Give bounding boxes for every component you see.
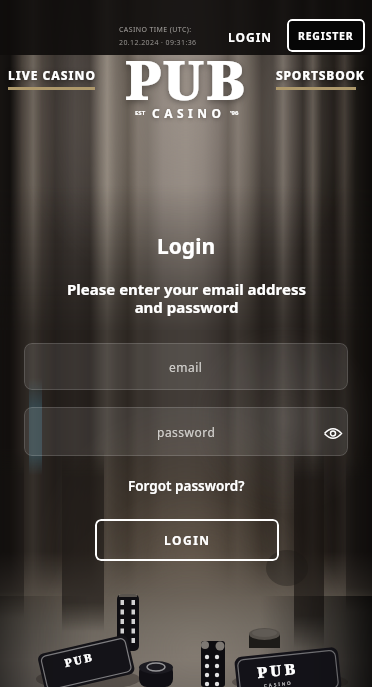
button[interactable]: password bbox=[24, 407, 348, 456]
button[interactable]: Forgot password? bbox=[128, 477, 245, 495]
staticText: LIVE CASINO bbox=[8, 67, 96, 83]
button[interactable]: LOGIN bbox=[224, 22, 276, 52]
button[interactable]: PUB bbox=[125, 42, 248, 132]
button[interactable]: SPORTSBOOK bbox=[276, 67, 365, 90]
staticText: REGISTER bbox=[298, 29, 354, 43]
staticText: PUB bbox=[63, 649, 95, 670]
staticText: EST bbox=[135, 109, 146, 117]
staticText: PUB bbox=[256, 658, 300, 682]
button[interactable] bbox=[324, 427, 342, 440]
staticText: CASINO bbox=[264, 679, 293, 687]
staticText: CASINO bbox=[152, 105, 226, 121]
staticText: PUB bbox=[125, 42, 248, 116]
staticText: SPORTSBOOK bbox=[276, 67, 365, 83]
staticText: 20.12.2024 · 09:31:36 bbox=[119, 38, 197, 48]
staticText: CASINO TIME (UTC): bbox=[119, 25, 192, 35]
staticText: Login bbox=[157, 232, 216, 261]
button[interactable]: REGISTER bbox=[287, 19, 365, 52]
staticText: email bbox=[169, 359, 203, 375]
staticText: Forgot password? bbox=[128, 477, 245, 495]
staticText: LOGIN bbox=[164, 532, 211, 548]
staticText: Please enter your email address and pass… bbox=[67, 279, 306, 318]
button[interactable]: LIVE CASINO bbox=[8, 67, 96, 90]
staticText: LOGIN bbox=[228, 29, 273, 45]
button[interactable]: email bbox=[24, 343, 348, 390]
staticText: password bbox=[157, 424, 216, 440]
button[interactable]: LOGIN bbox=[95, 519, 279, 561]
staticText: '96 bbox=[230, 109, 239, 117]
